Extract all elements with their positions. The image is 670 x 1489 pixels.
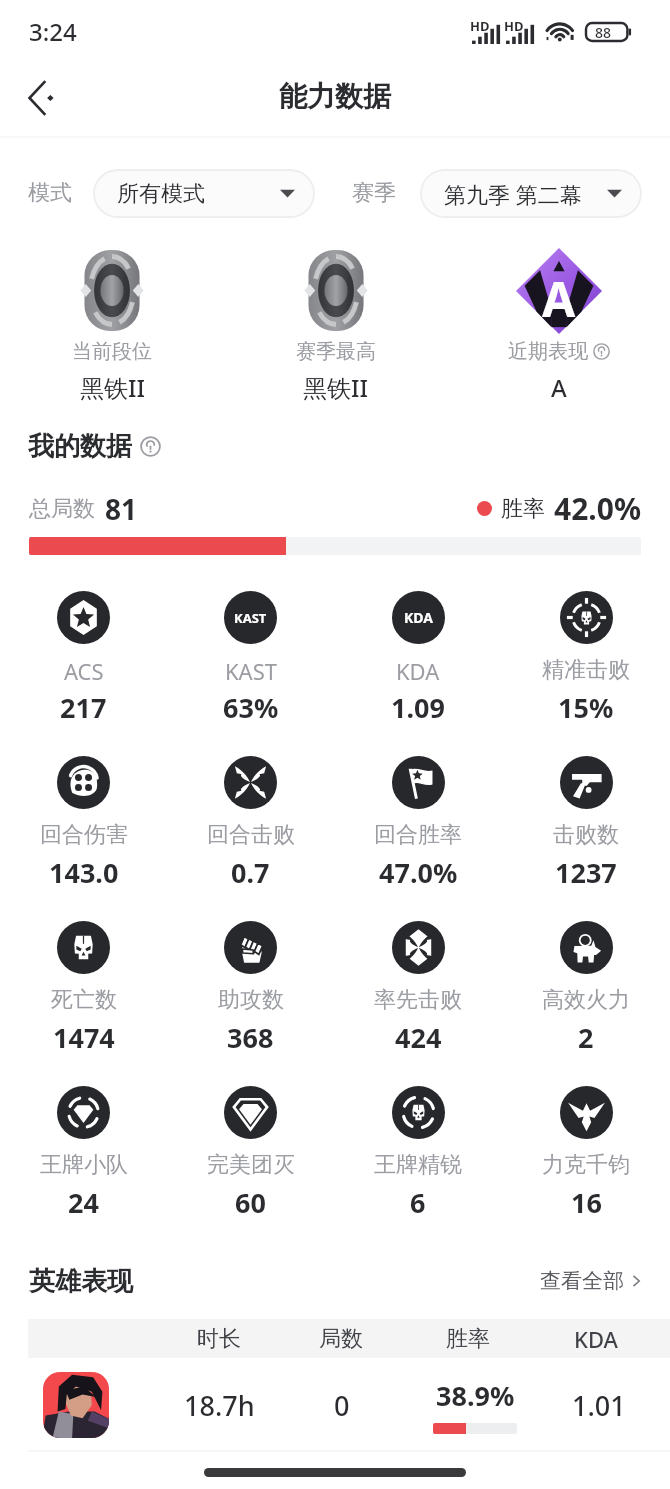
staticText: HD — [470, 17, 490, 35]
staticText: KAST — [225, 656, 277, 686]
staticText: 胜率 — [446, 1325, 490, 1353]
staticText: HD — [504, 17, 524, 35]
button[interactable]: 击败数 — [502, 737, 670, 902]
button[interactable]: 回合击败 — [167, 737, 334, 902]
staticText: 6 — [410, 1184, 426, 1221]
staticText: 63% — [223, 689, 279, 726]
button[interactable]: 精准击败 — [502, 572, 670, 737]
staticText: 2 — [578, 1019, 594, 1056]
staticText: 16 — [571, 1184, 602, 1221]
staticText: 黑铁II — [80, 371, 145, 404]
button[interactable]: 查看全部 — [536, 1264, 648, 1298]
staticText: KDA — [396, 656, 440, 686]
staticText: 24 — [68, 1184, 99, 1221]
staticText: 回合击败 — [207, 821, 295, 849]
staticText: 完美团灭 — [207, 1151, 295, 1179]
staticText: 赛季 — [352, 179, 396, 207]
staticText: 1237 — [555, 854, 617, 891]
button[interactable]: 王牌精锐 — [334, 1067, 502, 1232]
staticText: ACS — [64, 656, 104, 686]
staticText: 王牌精锐 — [374, 1151, 462, 1179]
button[interactable]: 完美团灭 — [167, 1067, 334, 1232]
staticText: 42.0% — [554, 488, 641, 529]
button[interactable]: 死亡数 — [0, 902, 167, 1067]
staticText: 0.7 — [231, 854, 270, 891]
button[interactable]: 18.7h — [0, 1358, 670, 1452]
staticText: 力克千钧 — [542, 1151, 630, 1179]
staticText: 18.7h — [184, 1387, 255, 1424]
staticText: KAST — [234, 609, 267, 627]
button[interactable]: ACS — [0, 572, 167, 737]
button[interactable]: 回合胜率 — [334, 737, 502, 902]
staticText: 率先击败 — [374, 986, 462, 1014]
staticText: 局数 — [319, 1325, 363, 1353]
button[interactable]: 助攻数 — [167, 902, 334, 1067]
staticText: 15% — [558, 689, 614, 726]
staticText: 赛季最高 — [296, 339, 376, 364]
staticText: 0 — [334, 1387, 350, 1424]
button[interactable]: 高效火力 — [502, 902, 670, 1067]
staticText: 1.09 — [391, 689, 445, 726]
staticText: 143.0 — [49, 854, 119, 891]
button[interactable]: 所有模式 — [93, 169, 315, 218]
staticText: 60 — [235, 1184, 266, 1221]
staticText: 能力数据 — [279, 79, 391, 114]
button[interactable]: KAST — [167, 572, 334, 737]
staticText: KDA — [574, 1324, 618, 1354]
staticText: 1474 — [53, 1019, 115, 1056]
staticText: 我的数据 — [28, 430, 132, 463]
staticText: 当前段位 — [72, 339, 152, 364]
staticText: 所有模式 — [117, 180, 205, 208]
staticText: 王牌小队 — [40, 1151, 128, 1179]
staticText: 47.0% — [379, 854, 458, 891]
staticText: 3:24 — [29, 15, 77, 48]
button[interactable]: KDA — [334, 572, 502, 737]
staticText: 助攻数 — [218, 986, 284, 1014]
button[interactable]: 率先击败 — [334, 902, 502, 1067]
staticText: KDA — [404, 608, 433, 627]
staticText: 模式 — [28, 179, 72, 207]
staticText: A — [542, 266, 576, 331]
staticText: 368 — [227, 1019, 274, 1056]
button[interactable]: 王牌小队 — [0, 1067, 167, 1232]
staticText: 时长 — [197, 1325, 241, 1353]
staticText: 死亡数 — [51, 986, 117, 1014]
button[interactable]: 第九季 第二幕 — [420, 169, 642, 218]
staticText: 81 — [105, 490, 138, 528]
staticText: 击败数 — [553, 821, 619, 849]
staticText: 查看全部 — [540, 1268, 624, 1294]
staticText: 回合伤害 — [40, 821, 128, 849]
button[interactable]: 回合伤害 — [0, 737, 167, 902]
staticText: 高效火力 — [542, 986, 630, 1014]
staticText: 近期表现 — [508, 339, 588, 364]
staticText: 英雄表现 — [29, 1265, 133, 1298]
staticText: A — [551, 371, 567, 404]
staticText: 胜率 — [501, 495, 545, 523]
button[interactable]: Back — [12, 69, 70, 127]
staticText: 回合胜率 — [374, 821, 462, 849]
staticText: 第九季 第二幕 — [444, 179, 582, 209]
staticText: 38.9% — [436, 1377, 515, 1414]
staticText: 1.01 — [572, 1387, 626, 1424]
staticText: 217 — [60, 689, 107, 726]
staticText: 88 — [595, 23, 612, 41]
button[interactable]: 力克千钧 — [502, 1067, 670, 1232]
staticText: 精准击败 — [542, 656, 630, 684]
staticText: 424 — [395, 1019, 442, 1056]
staticText: 黑铁II — [303, 371, 368, 404]
staticText: 总局数 — [29, 495, 95, 523]
